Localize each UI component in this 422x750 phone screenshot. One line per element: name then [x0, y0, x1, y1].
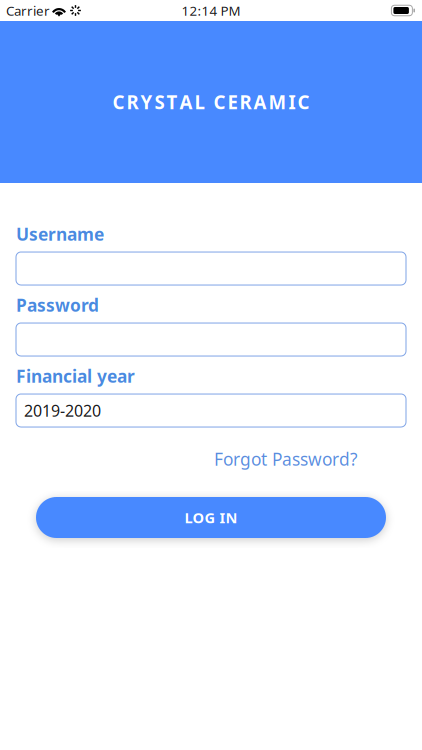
staticText: 12:14 PM — [181, 2, 240, 19]
staticText: Carrier — [6, 2, 50, 19]
staticText: 2019-2020 — [24, 400, 101, 421]
staticText: Forgot Password? — [214, 447, 358, 470]
button[interactable]: LOG IN — [36, 497, 386, 538]
button[interactable] — [16, 323, 406, 356]
staticText: LOG IN — [184, 508, 237, 527]
button[interactable]: Forgot Password? — [214, 447, 358, 470]
staticText: Password — [16, 293, 99, 316]
button[interactable]: 2019-2020 — [16, 394, 406, 427]
staticText: C R Y S T A L C E R A M I C — [112, 90, 309, 114]
staticText: Username — [16, 222, 104, 245]
staticText: Financial year — [16, 364, 135, 387]
button[interactable] — [16, 252, 406, 285]
